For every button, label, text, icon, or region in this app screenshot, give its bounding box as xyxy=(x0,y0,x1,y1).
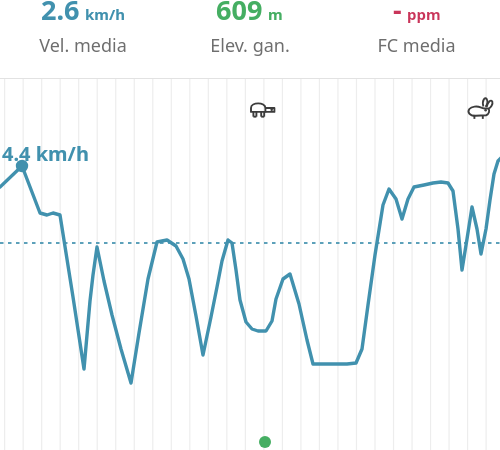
staticText: km/h xyxy=(85,4,125,24)
button[interactable]: 609 xyxy=(166,0,333,62)
button[interactable]: 2.6 xyxy=(0,0,166,62)
staticText: 4.4 km/h xyxy=(2,140,89,167)
staticText: Elev. gan. xyxy=(210,33,290,58)
other: Fastest point xyxy=(466,96,494,122)
staticText: - xyxy=(393,0,402,28)
staticText: 609 xyxy=(216,0,263,28)
staticText: ppm xyxy=(407,4,441,24)
staticText: 2.6 xyxy=(41,0,80,28)
staticText: m xyxy=(268,4,283,24)
staticText: Vel. media xyxy=(39,33,127,58)
other: Slowest point xyxy=(248,97,278,121)
button[interactable]: Slowest point xyxy=(0,79,500,450)
staticText: FC media xyxy=(377,33,456,58)
button[interactable]: - xyxy=(333,0,500,62)
